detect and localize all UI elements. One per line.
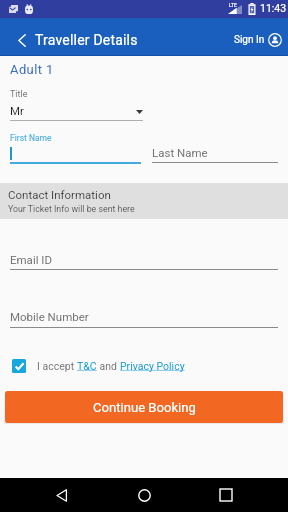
staticText: Your Ticket Info will be sent here — [8, 204, 135, 214]
staticText: Mr — [10, 104, 24, 117]
button[interactable]: Privacy Policy — [120, 360, 185, 372]
button[interactable]: T&C — [77, 360, 97, 372]
staticText: Sign In — [234, 34, 265, 46]
button[interactable]: Home — [132, 483, 156, 507]
staticText: Email ID — [10, 253, 52, 266]
staticText: Last Name — [152, 146, 208, 159]
staticText: Mobile Number — [10, 310, 89, 323]
staticText: First Name — [10, 133, 52, 143]
staticText: and — [97, 360, 120, 372]
staticText: I accept — [37, 360, 77, 372]
staticText: Title — [10, 89, 28, 100]
staticText: LTE — [229, 2, 237, 8]
button[interactable]: I accept — [8, 353, 185, 379]
button[interactable]: Recent apps — [214, 483, 238, 507]
staticText: Adult 1 — [10, 62, 54, 77]
button[interactable]: Continue Booking — [5, 391, 283, 423]
staticText: Traveller Details — [35, 32, 138, 48]
button[interactable]: Back — [8, 26, 36, 54]
button[interactable]: Mr — [0, 101, 152, 123]
button[interactable]: Back — [50, 483, 74, 507]
button[interactable]: Sign In — [226, 25, 282, 55]
staticText: 11:43 — [260, 2, 287, 14]
staticText: Contact Information — [8, 188, 111, 201]
staticText: Continue Booking — [93, 400, 196, 415]
